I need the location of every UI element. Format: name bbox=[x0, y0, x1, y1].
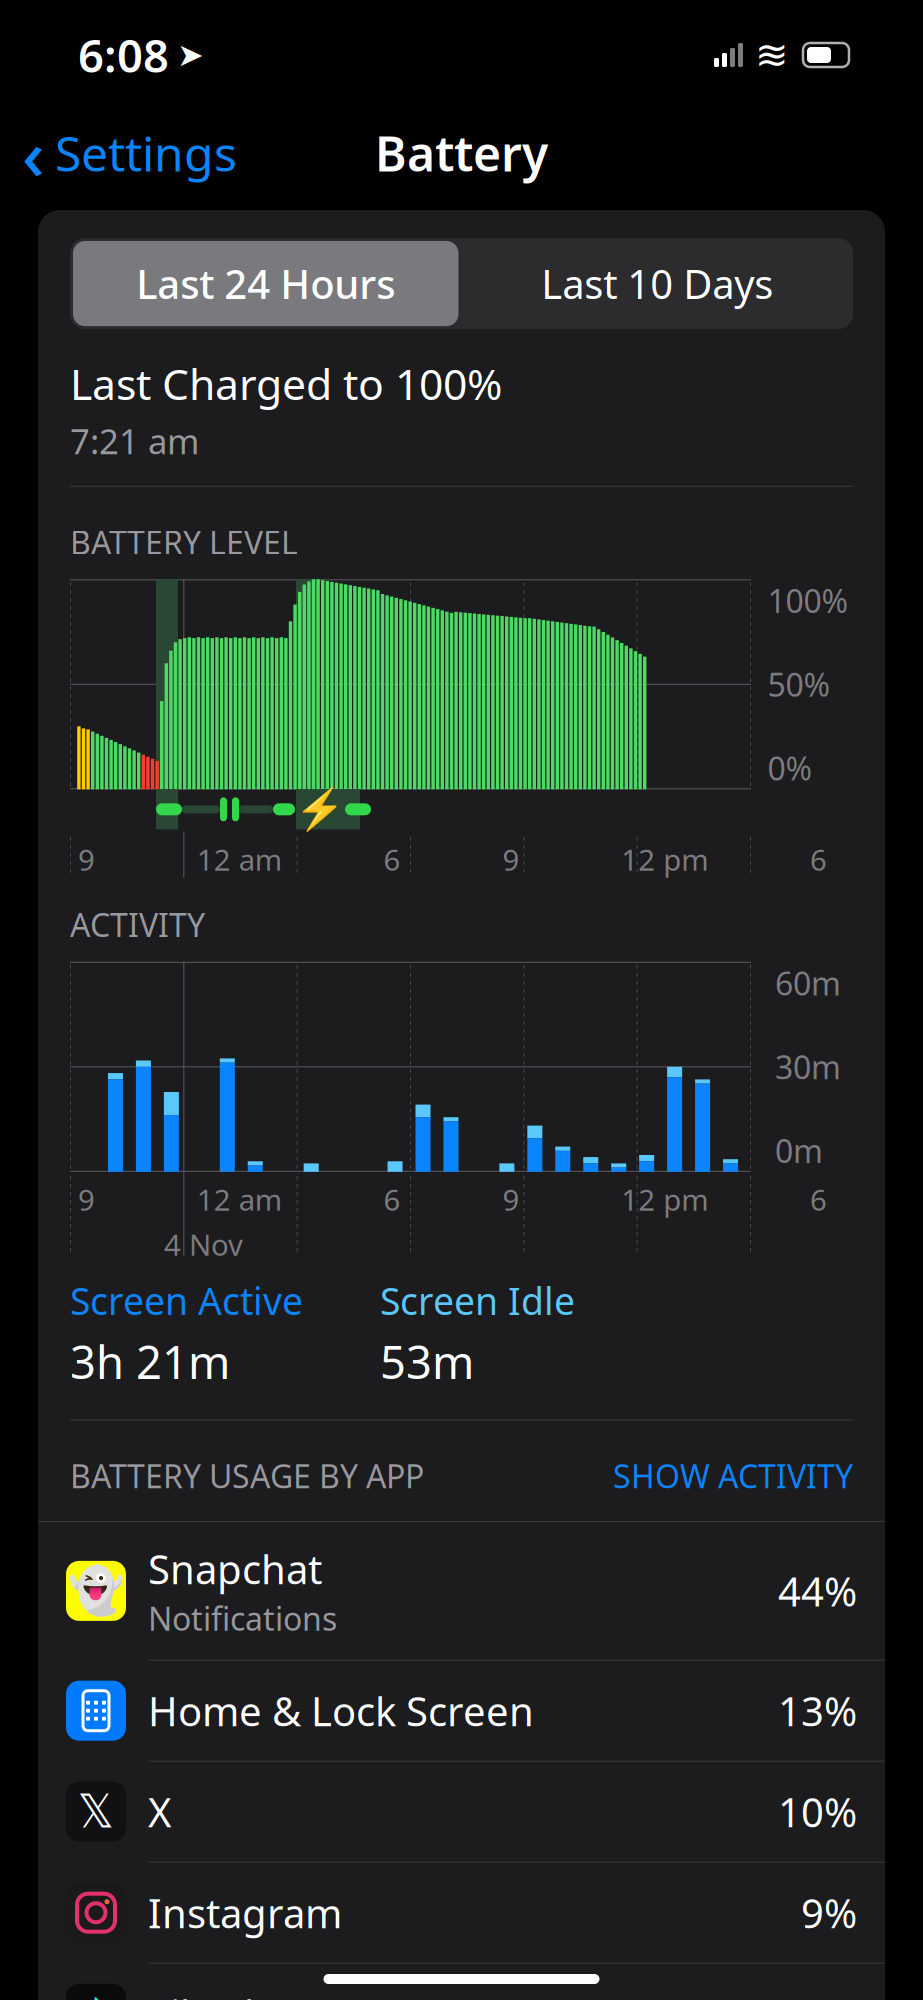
staticText: Instagram bbox=[148, 1886, 342, 1939]
staticText: ⚡ bbox=[295, 786, 345, 832]
staticText: 9 bbox=[78, 840, 95, 879]
staticText: 6 bbox=[384, 1180, 401, 1219]
staticText: Battery bbox=[375, 121, 548, 185]
button[interactable]: 👻 bbox=[38, 1522, 885, 1661]
staticText: ‹ bbox=[22, 107, 45, 199]
staticText: 9 bbox=[78, 1180, 95, 1219]
staticText: 6 bbox=[384, 840, 401, 879]
staticText: 100% bbox=[767, 579, 848, 622]
staticText: Last 10 Days bbox=[541, 257, 773, 310]
staticText: BATTERY USAGE BY APP bbox=[70, 1455, 424, 1497]
staticText: 𝕏 bbox=[77, 1786, 114, 1837]
staticText: SHOW ACTIVITY bbox=[613, 1455, 853, 1497]
staticText: 6 bbox=[810, 1180, 827, 1219]
staticText: 0% bbox=[767, 747, 812, 789]
staticText: 60m bbox=[775, 962, 841, 1004]
button[interactable]: SHOW ACTIVITY bbox=[613, 1449, 853, 1503]
staticText: 6:08 bbox=[78, 25, 169, 85]
staticText: Notifications bbox=[148, 1597, 337, 1640]
staticText: 12 pm bbox=[621, 840, 708, 879]
button[interactable]: Instagram bbox=[38, 1863, 885, 1964]
button[interactable]: ‹ bbox=[0, 99, 237, 207]
staticText: 9% bbox=[801, 1886, 857, 1939]
staticText: 4 Nov bbox=[164, 1225, 243, 1264]
staticText: 30m bbox=[775, 1046, 841, 1088]
staticText: ≋ bbox=[755, 32, 789, 78]
staticText: 0m bbox=[775, 1129, 823, 1172]
staticText: Home & Lock Screen bbox=[148, 1684, 534, 1737]
staticText: 50% bbox=[767, 663, 830, 706]
staticText: Screen Idle bbox=[380, 1276, 575, 1325]
staticText: ACTIVITY bbox=[70, 903, 205, 946]
staticText: 3h 21m bbox=[70, 1331, 230, 1392]
staticText: 44% bbox=[778, 1564, 857, 1617]
staticText: 7:21 am bbox=[70, 418, 199, 464]
staticText: 12 am bbox=[197, 1180, 282, 1219]
staticText: X bbox=[148, 1785, 171, 1838]
staticText: Settings bbox=[55, 121, 237, 185]
staticText: ♪ bbox=[82, 1989, 109, 2000]
staticText: TikTok bbox=[148, 1987, 265, 2000]
button[interactable]: Last 10 Days bbox=[461, 238, 853, 329]
button[interactable]: 𝕏 bbox=[38, 1762, 885, 1863]
staticText: Snapchat bbox=[148, 1542, 322, 1595]
staticText: 👻 bbox=[68, 1565, 124, 1617]
staticText: BATTERY LEVEL bbox=[70, 521, 298, 563]
staticText: 9 bbox=[502, 840, 519, 879]
staticText: 6 bbox=[810, 840, 827, 879]
button[interactable]: ♪ bbox=[38, 1964, 885, 2000]
staticText: Last Charged to 100% bbox=[70, 355, 502, 412]
button[interactable]: Last 24 Hours bbox=[70, 238, 461, 329]
staticText: Screen Active bbox=[70, 1276, 303, 1325]
staticText: 10% bbox=[778, 1785, 857, 1838]
staticText: 12 am bbox=[197, 840, 282, 879]
button[interactable]: Home & Lock Screen bbox=[38, 1661, 885, 1762]
staticText: 9 bbox=[502, 1180, 519, 1219]
staticText: 12 pm bbox=[621, 1180, 708, 1219]
staticText: 53m bbox=[380, 1331, 474, 1392]
staticText: ➤ bbox=[177, 37, 204, 73]
staticText: 13% bbox=[778, 1684, 857, 1737]
staticText: Last 24 Hours bbox=[136, 257, 395, 310]
